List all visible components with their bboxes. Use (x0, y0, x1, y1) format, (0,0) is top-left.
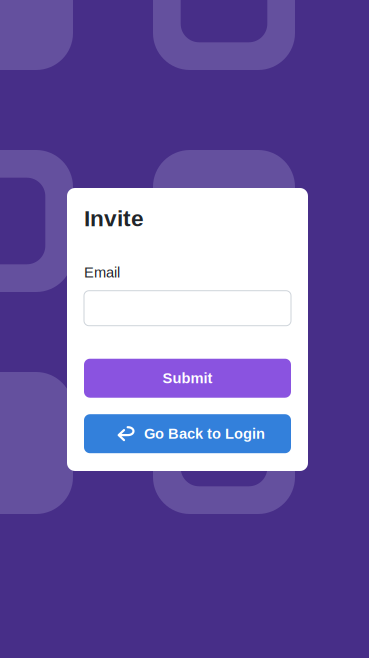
staticText: Email (84, 264, 120, 281)
button[interactable]: Submit (84, 359, 291, 398)
staticText: Submit (162, 370, 212, 386)
button[interactable]: Go Back to Login (84, 414, 291, 453)
staticText: Go Back to Login (144, 425, 265, 442)
staticText: Invite (84, 206, 144, 231)
